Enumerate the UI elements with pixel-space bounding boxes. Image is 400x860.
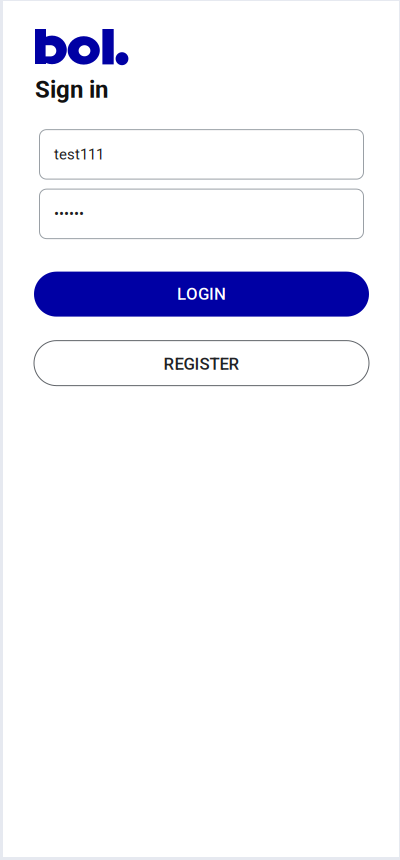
staticText: REGISTER (163, 354, 239, 374)
button[interactable]: Password (39, 189, 364, 239)
button[interactable]: LOGIN (34, 272, 369, 317)
button[interactable]: REGISTER (34, 341, 369, 386)
staticText: Sign in (35, 75, 108, 104)
button[interactable]: Email address or username (39, 129, 364, 180)
staticText: LOGIN (177, 284, 226, 304)
staticText: test111 (54, 146, 104, 163)
staticText: •••••• (54, 205, 84, 223)
